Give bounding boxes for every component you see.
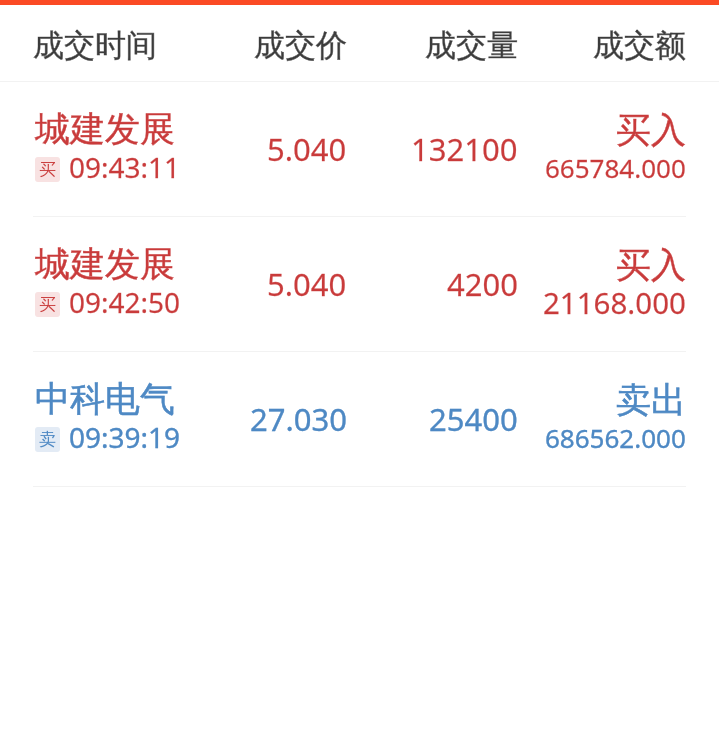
button[interactable]: 城建发展 (0, 217, 719, 351)
staticText: 5.040 (267, 263, 347, 305)
staticText: 09:43:11 (69, 148, 181, 186)
staticText: 买入 (616, 243, 686, 287)
staticText: 27.030 (250, 398, 347, 440)
staticText: 686562.000 (545, 420, 686, 455)
staticText: 09:42:50 (69, 283, 181, 321)
staticText: 5.040 (267, 263, 347, 305)
staticText: 132100 (411, 128, 518, 170)
staticText: 09:39:19 (69, 418, 181, 456)
staticText: 25400 (429, 398, 518, 440)
staticText: 卖出 (616, 378, 686, 422)
staticText: 09:42:50 (69, 283, 181, 321)
staticText: 21168.000 (543, 282, 686, 322)
staticText: 成交时间 (33, 26, 157, 65)
staticText: 买入 (616, 108, 686, 152)
staticText: 成交额 (593, 26, 686, 65)
staticText: 买入 (616, 108, 686, 152)
staticText: 4200 (447, 263, 518, 305)
staticText: 09:39:19 (69, 418, 181, 456)
staticText: 5.040 (267, 128, 347, 170)
staticText: 4200 (447, 263, 518, 305)
staticText: 城建发展 (35, 242, 175, 286)
staticText: 买 (39, 294, 56, 315)
staticText: 买 (39, 159, 56, 180)
staticText: 卖 (39, 429, 56, 450)
staticText: 665784.000 (545, 150, 686, 185)
staticText: 城建发展 (35, 242, 175, 286)
staticText: 686562.000 (545, 420, 686, 455)
staticText: 买入 (616, 243, 686, 287)
button[interactable]: 中科电气 (0, 352, 719, 486)
staticText: 27.030 (250, 398, 347, 440)
staticText: 5.040 (267, 128, 347, 170)
staticText: 成交价 (254, 26, 347, 65)
staticText: 成交时间 (33, 26, 157, 65)
staticText: 中科电气 (35, 377, 175, 421)
staticText: 132100 (411, 128, 518, 170)
staticText: 25400 (429, 398, 518, 440)
staticText: 城建发展 (35, 107, 175, 151)
staticText: 成交额 (593, 26, 686, 65)
staticText: 09:43:11 (69, 148, 181, 186)
staticText: 成交量 (425, 26, 518, 65)
staticText: 成交量 (425, 26, 518, 65)
staticText: 成交价 (254, 26, 347, 65)
staticText: 城建发展 (35, 107, 175, 151)
staticText: 中科电气 (35, 377, 175, 421)
staticText: 卖出 (616, 378, 686, 422)
staticText: 21168.000 (543, 282, 686, 322)
button[interactable]: 城建发展 (0, 82, 719, 216)
staticText: 665784.000 (545, 150, 686, 185)
